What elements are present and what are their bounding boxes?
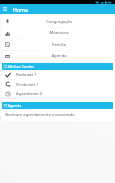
button[interactable]: Monitoria bbox=[2, 28, 113, 38]
staticText: Aguardando 0 bbox=[16, 91, 42, 96]
button[interactable]: Realizada 1 bbox=[2, 70, 113, 79]
staticText: Realizada 1 bbox=[16, 72, 37, 77]
button[interactable]: Aguardando 0 bbox=[2, 89, 113, 98]
button[interactable]: Pendentes 1 bbox=[2, 79, 113, 89]
staticText: Congregação bbox=[13, 19, 105, 25]
staticText: Minhas Tarefas bbox=[8, 64, 35, 69]
button[interactable]: Menu bbox=[0, 4, 9, 14]
staticText: Nenhum agendamento encontrado bbox=[5, 112, 75, 118]
staticText: Monitoria bbox=[13, 30, 105, 36]
staticText: Pendentes 1 bbox=[16, 82, 39, 87]
staticText: Home bbox=[13, 6, 28, 13]
staticText: Agenda bbox=[13, 53, 105, 59]
button[interactable]: Agenda bbox=[2, 102, 113, 109]
staticText: Agenda bbox=[8, 103, 22, 108]
button[interactable]: Congregação bbox=[2, 16, 113, 27]
button[interactable]: Minhas Tarefas bbox=[2, 63, 113, 70]
staticText: Família bbox=[13, 42, 105, 48]
button[interactable]: Família bbox=[2, 39, 113, 50]
button[interactable]: Agenda bbox=[2, 51, 113, 61]
